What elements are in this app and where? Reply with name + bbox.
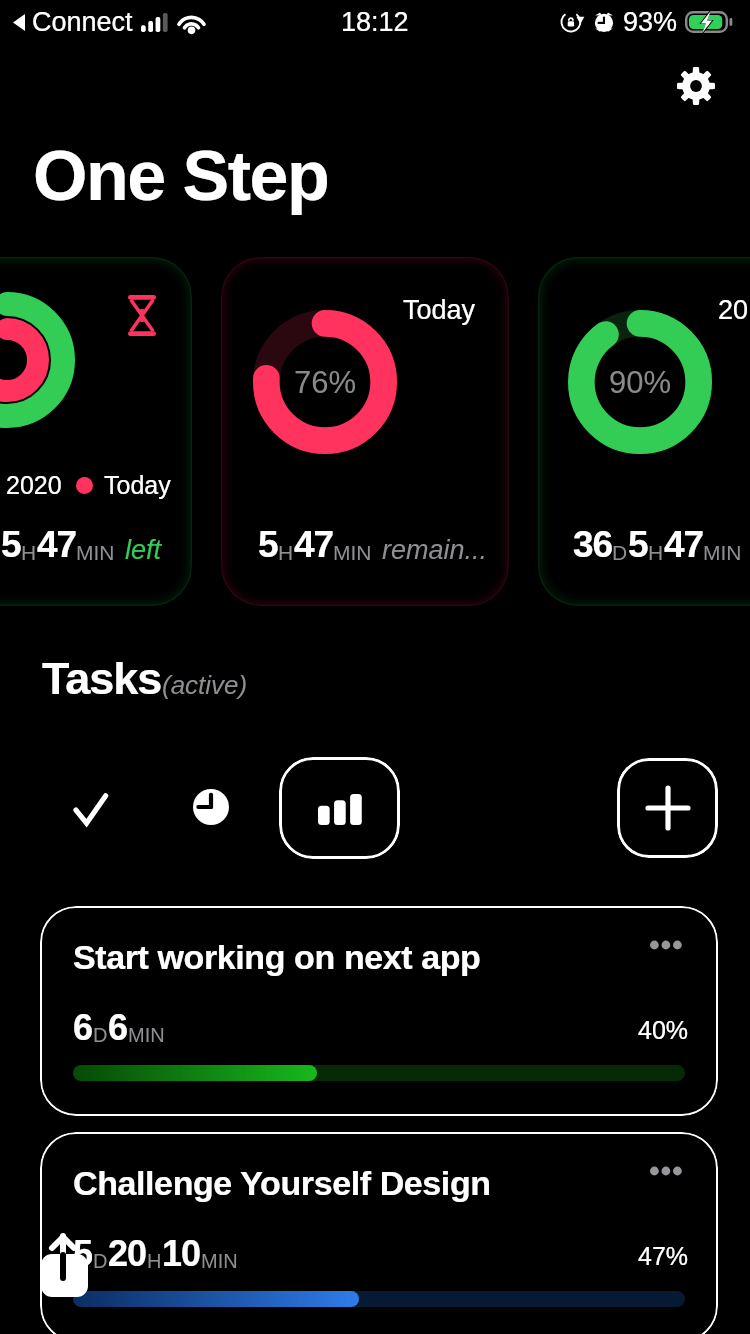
staticText: H — [147, 1250, 162, 1272]
button[interactable]: Scheduled tasks — [174, 770, 248, 844]
staticText: MIN — [333, 541, 372, 564]
staticText: 47% — [638, 1242, 689, 1270]
staticText: MIN — [703, 541, 742, 564]
staticText: D — [612, 541, 628, 564]
staticText: MIN — [76, 541, 115, 564]
staticText: 36 — [573, 524, 612, 565]
staticText: 47 — [294, 524, 333, 565]
button[interactable]: 2020 — [0, 257, 192, 606]
staticText: 20 — [718, 295, 749, 325]
staticText: 76% — [294, 365, 357, 400]
button[interactable]: Active tasks — [279, 757, 400, 859]
staticText: Connect — [32, 7, 133, 37]
staticText: Today — [403, 295, 476, 325]
staticText: 2020 — [6, 471, 62, 499]
other: Share — [41, 1234, 88, 1297]
staticText: One Step — [33, 137, 329, 215]
staticText: 5 — [628, 524, 648, 565]
staticText: MIN — [201, 1250, 238, 1272]
button[interactable]: Settings — [666, 56, 726, 116]
staticText: H — [648, 541, 664, 564]
staticText: 93% — [623, 7, 678, 37]
staticText: 47 — [664, 524, 703, 565]
staticText: Tasks — [42, 653, 162, 703]
staticText: MIN — [128, 1024, 165, 1046]
staticText: 40% — [638, 1016, 689, 1044]
staticText: 18:12 — [341, 7, 409, 37]
staticText: 6 — [108, 1007, 128, 1047]
staticText: 10 — [162, 1233, 201, 1273]
staticText: 47 — [37, 524, 76, 565]
staticText: 90% — [609, 365, 672, 400]
staticText: (active) — [162, 670, 248, 699]
staticText: 6 — [73, 1007, 93, 1047]
staticText: 5 — [258, 524, 278, 565]
staticText: H — [278, 541, 294, 564]
button[interactable]: 90% — [538, 257, 750, 606]
staticText: Challenge Yourself Design — [73, 1164, 491, 1202]
staticText: 5 — [73, 1233, 93, 1273]
button[interactable]: Challenge Yourself Design — [40, 1132, 718, 1334]
staticText: 20 — [108, 1233, 147, 1273]
staticText: D — [93, 1024, 108, 1046]
button[interactable]: 76% — [221, 257, 509, 606]
staticText: remain... — [382, 535, 488, 565]
staticText: Start working on next app — [73, 938, 481, 976]
staticText: Today — [104, 471, 171, 499]
staticText: H — [21, 541, 37, 564]
button[interactable]: Completed tasks — [53, 772, 127, 846]
button[interactable]: Add task — [617, 758, 718, 858]
staticText: left — [125, 535, 162, 565]
staticText: 5 — [1, 524, 21, 565]
button[interactable]: Start working on next app — [40, 906, 718, 1116]
staticText: D — [93, 1250, 108, 1272]
